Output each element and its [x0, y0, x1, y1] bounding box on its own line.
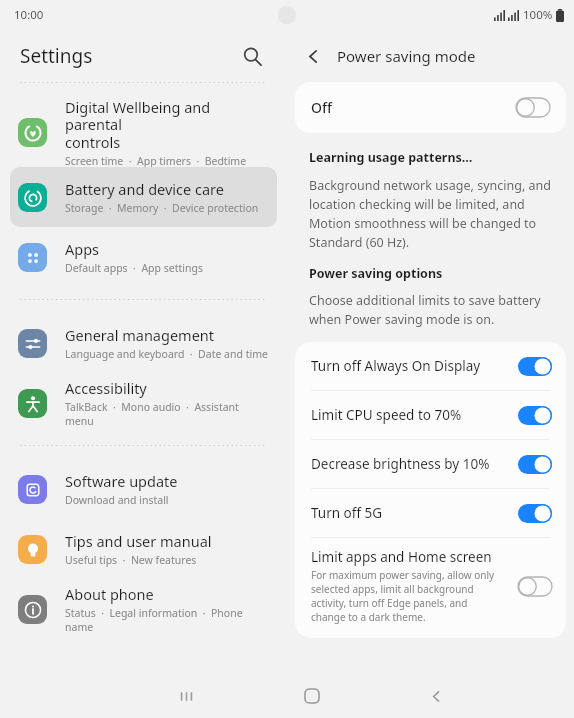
staticText: Battery and device care — [65, 179, 224, 199]
button[interactable]: Recent apps — [124, 674, 249, 718]
button[interactable]: Accessibility — [10, 373, 277, 433]
staticText: Decrease brightness by 10% — [311, 455, 518, 473]
button[interactable]: Apps — [10, 227, 277, 287]
staticText: Accessibility — [65, 378, 147, 398]
staticText: Software update — [65, 471, 178, 491]
button[interactable]: Back — [295, 38, 331, 74]
staticText: Off — [311, 98, 332, 117]
button[interactable]: Toggle on — [518, 504, 552, 523]
staticText: Status · Legal information · Phone name — [65, 606, 269, 634]
button[interactable]: Toggle on — [518, 406, 552, 425]
staticText: Download and install — [65, 493, 169, 507]
button[interactable]: Decrease brightness by 10% — [295, 440, 566, 488]
staticText: About phone — [65, 584, 154, 604]
button[interactable]: Search — [235, 39, 269, 73]
button[interactable]: General management — [10, 313, 277, 373]
staticText: Turn off 5G — [311, 504, 518, 522]
staticText: Limit apps and Home screen — [311, 548, 492, 566]
staticText: Screen time · App timers · Bedtime mode — [65, 154, 269, 167]
button[interactable]: Toggle on — [518, 357, 552, 376]
staticText: Tips and user manual — [65, 531, 212, 551]
staticText: Digital Wellbeing and parental controls — [65, 97, 269, 152]
button[interactable]: Tips and user manual — [10, 519, 277, 579]
staticText: Settings — [20, 43, 93, 69]
staticText: 100% — [523, 7, 553, 23]
staticText: Default apps · App settings — [65, 261, 203, 275]
staticText: Limit CPU speed to 70% — [311, 406, 518, 424]
staticText: Power saving options — [309, 265, 443, 282]
staticText: 10:00 — [14, 7, 44, 23]
button[interactable]: Toggle off — [518, 577, 552, 596]
staticText: Storage · Memory · Device protection — [65, 201, 259, 215]
button[interactable]: About phone — [10, 579, 277, 639]
staticText: TalkBack · Mono audio · Assistant menu — [65, 400, 269, 428]
staticText: For maximum power saving, allow only sel… — [311, 568, 495, 624]
button[interactable]: Turn off Always On Display — [295, 342, 566, 390]
staticText: Apps — [65, 239, 100, 259]
button[interactable]: Home — [249, 674, 374, 718]
staticText: Choose additional limits to save battery… — [309, 292, 541, 328]
staticText: Turn off Always On Display — [311, 357, 518, 375]
staticText: Learning usage patterns… — [309, 149, 473, 166]
button[interactable]: Software update — [10, 459, 277, 519]
button[interactable]: Toggle on — [518, 455, 552, 474]
button[interactable]: Battery and device care — [10, 167, 277, 227]
button[interactable]: Limit apps and Home screen — [295, 538, 566, 638]
button[interactable]: Limit CPU speed to 70% — [295, 391, 566, 439]
button[interactable]: Turn off 5G — [295, 489, 566, 537]
staticText: Background network usage, syncing, and l… — [309, 177, 551, 251]
button[interactable]: Off — [295, 82, 566, 133]
staticText: Language and keyboard · Date and time — [65, 347, 268, 361]
button[interactable]: Back — [374, 674, 499, 718]
staticText: Power saving mode — [337, 46, 476, 66]
button[interactable]: Digital Wellbeing and parental controls — [10, 97, 277, 167]
staticText: General management — [65, 325, 215, 345]
button[interactable]: Toggle off — [516, 98, 550, 117]
staticText: Useful tips · New features — [65, 553, 197, 567]
